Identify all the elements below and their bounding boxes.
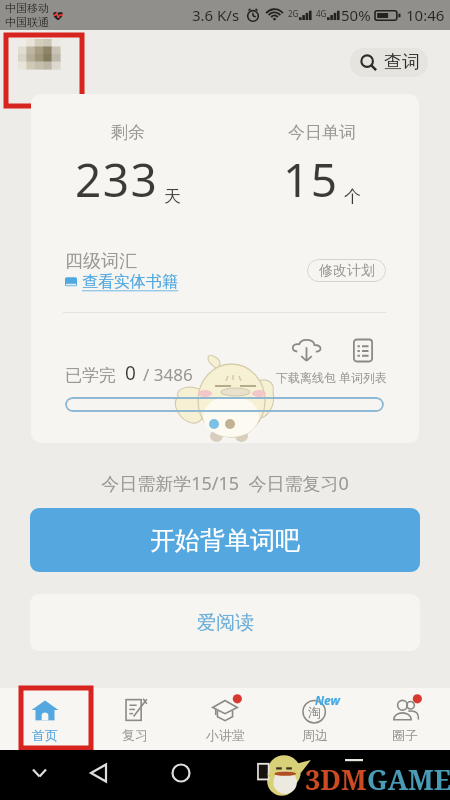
button[interactable]: 爱阅读 xyxy=(30,594,420,651)
staticText: 10:46 xyxy=(406,5,445,25)
button[interactable]: 圈子 xyxy=(360,696,450,743)
staticText: 2G xyxy=(288,8,299,19)
staticText: 开始背单词吧 xyxy=(150,525,300,556)
staticText: 爱阅读 xyxy=(197,611,254,635)
staticText: 圈子 xyxy=(392,727,418,743)
staticText: 3DM xyxy=(305,761,367,798)
button[interactable]: 小讲堂 xyxy=(180,696,270,743)
button[interactable]: 首页 xyxy=(0,696,90,743)
button[interactable]: 淘 xyxy=(270,696,360,743)
staticText: 剩余 xyxy=(111,122,145,143)
staticText: 已学完 xyxy=(65,365,116,386)
staticText: / 3486 xyxy=(143,363,193,386)
staticText: 4G xyxy=(316,8,327,19)
staticText: 小讲堂 xyxy=(206,727,245,743)
staticText: 下载离线包 xyxy=(276,370,336,385)
staticText: 修改计划 xyxy=(319,262,375,280)
button[interactable]: 修改计划 xyxy=(307,259,386,282)
staticText: 查词 xyxy=(384,51,420,74)
staticText: 淘 xyxy=(308,704,321,720)
staticText: 0 xyxy=(125,360,136,386)
staticText: 四级词汇 xyxy=(65,250,137,273)
staticText: 单词列表 xyxy=(339,370,387,385)
staticText: New xyxy=(315,692,340,708)
staticText: 周边 xyxy=(302,727,328,743)
staticText: 中国联通 xyxy=(5,15,49,29)
staticText: 查看实体书籍 xyxy=(82,272,178,292)
staticText: 个 xyxy=(344,186,361,207)
staticText: 天 xyxy=(164,186,181,207)
staticText: 中国移动 xyxy=(5,1,49,15)
button[interactable]: 查看实体书籍 xyxy=(65,272,178,292)
other: System navigation xyxy=(0,750,450,800)
button[interactable]: 单词列表 xyxy=(337,338,389,385)
staticText: 15 xyxy=(283,148,339,211)
staticText: 3.6 K/s xyxy=(192,5,240,25)
staticText: 50% xyxy=(341,5,371,25)
staticText: 今日单词 xyxy=(288,122,356,143)
button[interactable]: 开始背单词吧 xyxy=(30,508,420,572)
button[interactable]: 查词 xyxy=(350,48,428,77)
staticText: GAME xyxy=(367,761,450,798)
staticText: 今日需新学15/15 今日需复习0 xyxy=(0,471,450,496)
button[interactable]: 下载离线包 xyxy=(276,338,336,385)
staticText: 复习 xyxy=(122,727,148,743)
staticText: 首页 xyxy=(32,727,58,743)
staticText: 233 xyxy=(75,148,159,211)
button[interactable]: 复习 xyxy=(90,696,180,743)
